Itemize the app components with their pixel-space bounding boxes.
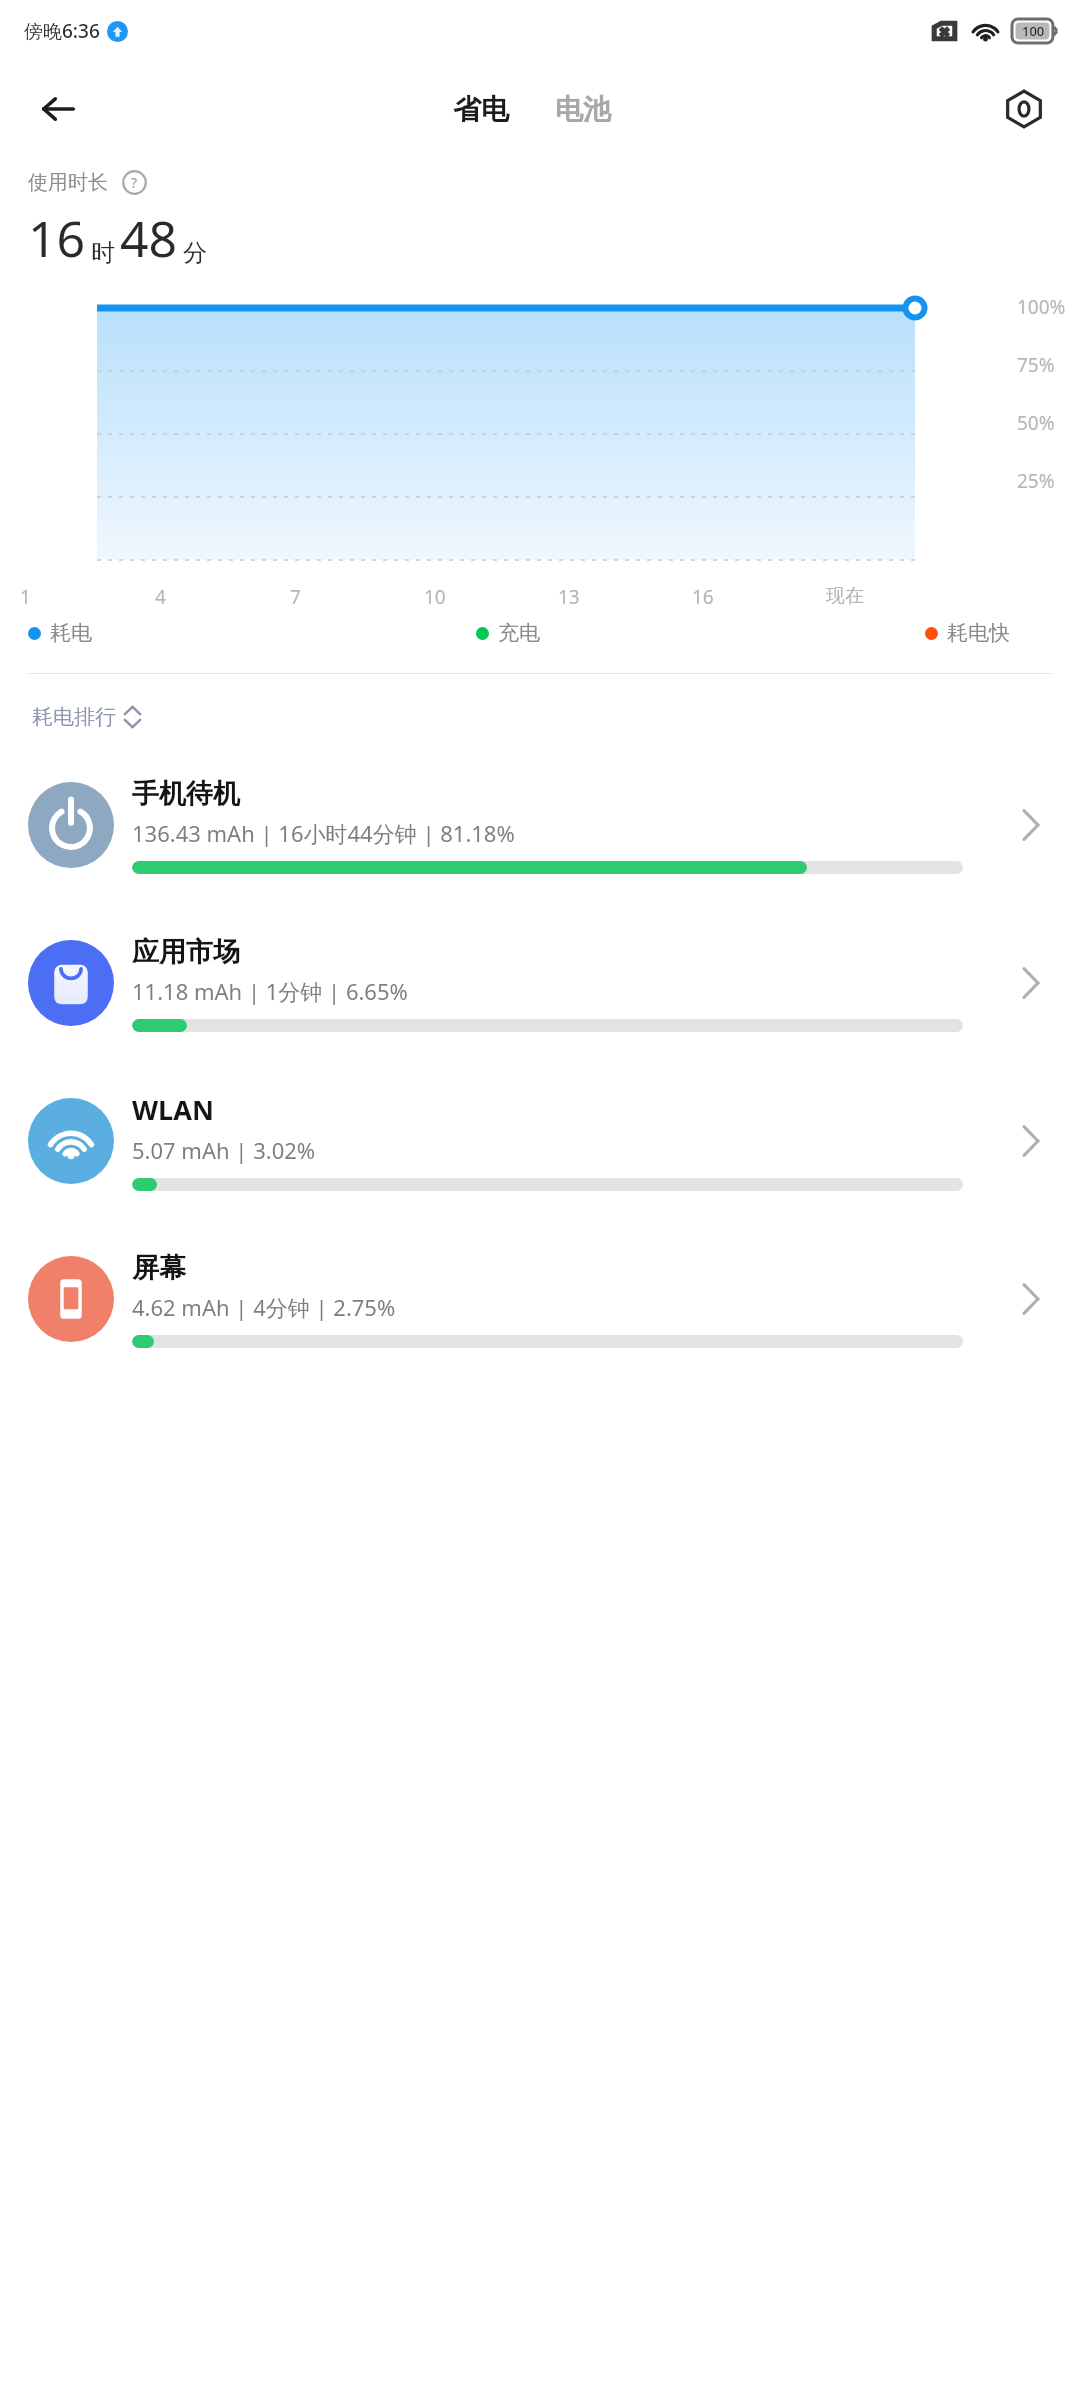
- staticText: 现在: [826, 584, 864, 608]
- button[interactable]: 应用市场: [0, 904, 1080, 1062]
- staticText: 16: [28, 204, 86, 272]
- button[interactable]: 查看详情: [1006, 1274, 1056, 1324]
- staticText: 耗电快: [947, 620, 1010, 646]
- staticText: 16: [692, 584, 714, 610]
- staticText: 136.43 mAh | 16小时44分钟 | 81.18%: [132, 818, 515, 848]
- staticText: 75%: [1017, 352, 1055, 378]
- staticText: 100%: [1017, 294, 1066, 320]
- button[interactable]: 查看详情: [1006, 1116, 1056, 1166]
- staticText: 4.62 mAh | 4分钟 | 2.75%: [132, 1292, 396, 1322]
- staticText: 耗电排行: [32, 704, 116, 730]
- staticText: 5.07 mAh | 3.02%: [132, 1135, 316, 1165]
- button[interactable]: 帮助: [118, 166, 150, 198]
- staticText: 7: [290, 584, 301, 610]
- button[interactable]: 设置: [996, 81, 1052, 137]
- staticText: WLAN: [132, 1091, 214, 1128]
- button[interactable]: 返回: [30, 81, 86, 137]
- staticText: 充电: [498, 620, 540, 646]
- staticText: 屏幕: [132, 1251, 186, 1285]
- staticText: 时: [91, 238, 115, 268]
- staticText: 傍晚6:36: [24, 18, 100, 44]
- button[interactable]: 查看详情: [1006, 800, 1056, 850]
- staticText: ?: [131, 173, 138, 192]
- staticText: 电池: [555, 92, 611, 127]
- staticText: 4: [155, 584, 166, 610]
- staticText: 25%: [1017, 468, 1055, 494]
- staticText: 手机待机: [132, 777, 240, 811]
- staticText: 耗电: [50, 620, 92, 646]
- staticText: 应用市场: [132, 935, 240, 969]
- staticText: 100: [1022, 22, 1045, 40]
- staticText: 13: [558, 584, 580, 610]
- button[interactable]: 省电: [447, 88, 515, 131]
- button[interactable]: 屏幕: [0, 1220, 1080, 1378]
- staticText: 省电: [453, 92, 509, 127]
- staticText: 48: [120, 204, 178, 272]
- staticText: 11.18 mAh | 1分钟 | 6.65%: [132, 976, 408, 1006]
- staticText: 50%: [1017, 410, 1055, 436]
- staticText: 分: [183, 238, 207, 268]
- button[interactable]: 电池: [549, 88, 617, 131]
- button[interactable]: 手机待机: [0, 746, 1080, 904]
- button[interactable]: 查看详情: [1006, 958, 1056, 1008]
- staticText: 10: [424, 584, 446, 610]
- staticText: 使用时长: [28, 170, 108, 195]
- button[interactable]: 耗电排行: [28, 698, 145, 736]
- button[interactable]: WLAN: [0, 1062, 1080, 1220]
- staticText: 1: [20, 584, 31, 610]
